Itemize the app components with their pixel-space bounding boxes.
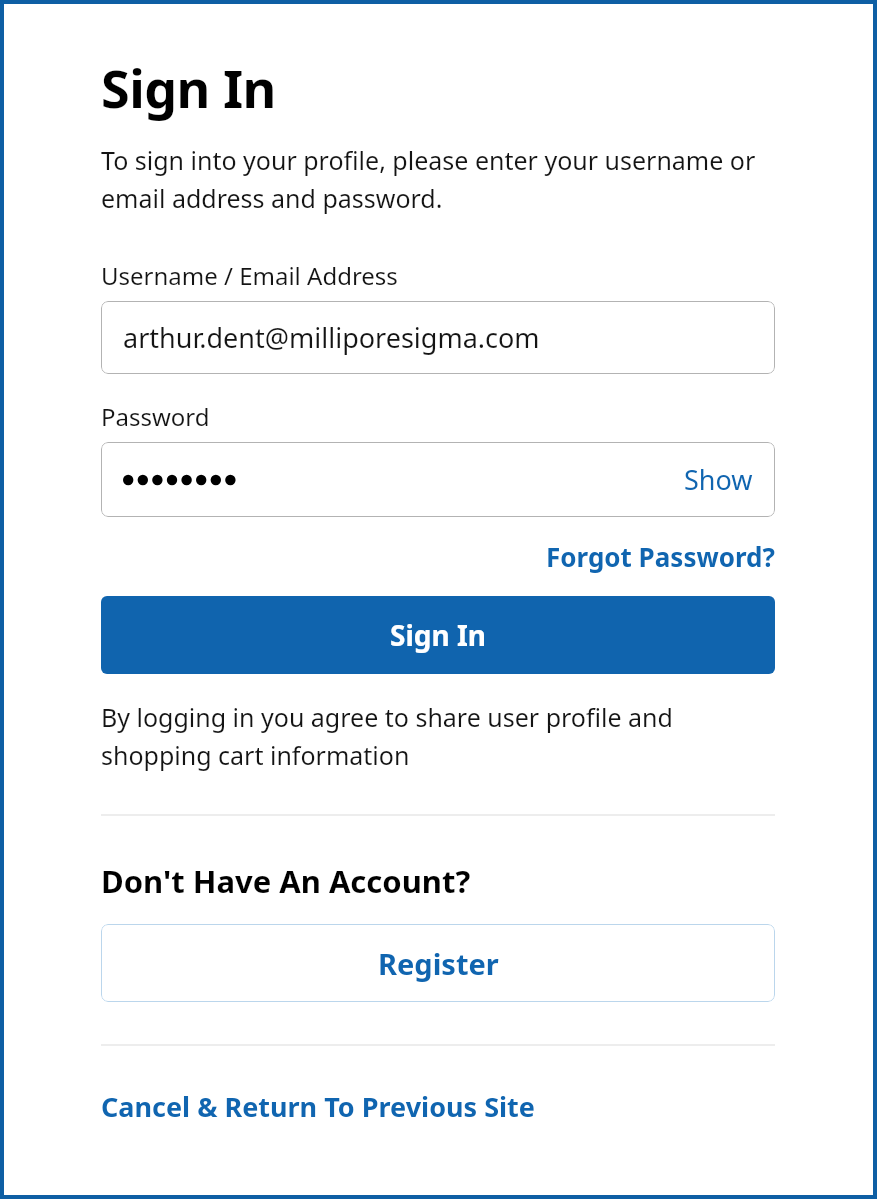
button[interactable]: Cancel & Return To Previous Site [101,1088,535,1125]
button[interactable]: Show [101,442,775,517]
staticText: Password [101,400,210,433]
button[interactable]: Register [101,924,775,1002]
button[interactable]: Sign In [101,596,775,674]
button[interactable]: Show [684,461,753,498]
staticText: Username / Email Address [101,259,398,292]
staticText: Don't Have An Account? [101,860,471,902]
staticText: Register [378,944,499,983]
staticText: Sign In [101,52,276,123]
staticText: To sign into your profile, please enter … [101,143,775,215]
staticText: By logging in you agree to share user pr… [101,700,775,772]
staticText: Show [684,461,753,498]
staticText: arthur.dent@milliporesigma.com [123,319,540,356]
staticText: Forgot Password? [546,539,775,574]
staticText: Sign In [390,616,487,654]
staticText: Cancel & Return To Previous Site [101,1088,535,1125]
button[interactable]: Forgot Password? [546,539,775,574]
button[interactable]: arthur.dent@milliporesigma.com [101,301,775,374]
